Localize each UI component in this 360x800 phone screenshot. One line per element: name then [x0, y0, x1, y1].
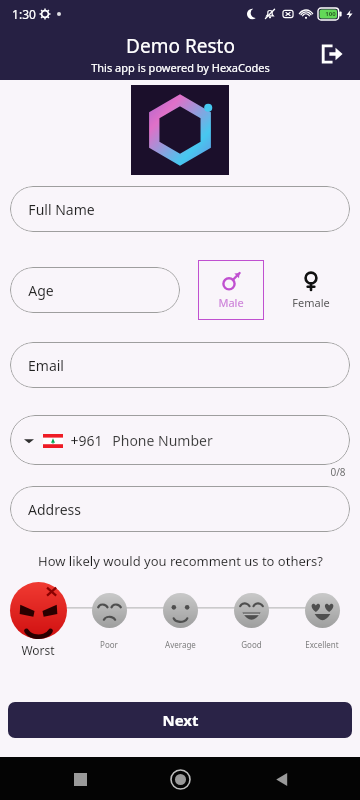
- staticText: Phone Number: [112, 431, 213, 450]
- staticText: Email: [28, 356, 64, 375]
- staticText: 100: [325, 10, 336, 18]
- button[interactable]: +961: [10, 415, 350, 465]
- staticText: Age: [28, 281, 54, 300]
- button[interactable]: Good: [219, 580, 283, 650]
- button[interactable]: Back: [260, 758, 302, 800]
- staticText: 0/8: [330, 465, 346, 479]
- staticText: This app is powered by HexaCodes: [91, 60, 270, 75]
- button[interactable]: Next: [8, 702, 352, 738]
- button[interactable]: Excellent: [290, 580, 354, 650]
- staticText: Demo Resto: [126, 33, 235, 59]
- staticText: How likely would you recomment us to oth…: [38, 552, 323, 570]
- button[interactable]: Male: [198, 260, 264, 320]
- staticText: Excellent: [305, 639, 339, 650]
- button[interactable]: Address: [10, 486, 350, 532]
- button[interactable]: Home: [159, 758, 201, 800]
- staticText: Average: [165, 639, 196, 650]
- staticText: Poor: [100, 639, 118, 650]
- staticText: Good: [241, 639, 262, 650]
- button[interactable]: Email: [10, 342, 350, 388]
- staticText: Female: [292, 295, 330, 310]
- button[interactable]: Female: [278, 260, 344, 320]
- staticText: Address: [28, 500, 81, 519]
- staticText: Next: [162, 710, 199, 730]
- staticText: Worst: [21, 642, 55, 658]
- button[interactable]: Average: [148, 580, 212, 650]
- button[interactable]: Logout: [312, 34, 352, 74]
- button[interactable]: Full Name: [10, 186, 350, 232]
- button[interactable]: Age: [10, 267, 180, 313]
- staticText: +961: [70, 431, 103, 450]
- button[interactable]: Worst: [6, 580, 70, 658]
- button[interactable]: Poor: [77, 580, 141, 650]
- staticText: 1:30: [12, 6, 36, 22]
- button[interactable]: Recent apps: [59, 758, 101, 800]
- staticText: Male: [218, 295, 244, 310]
- staticText: Full Name: [28, 200, 95, 219]
